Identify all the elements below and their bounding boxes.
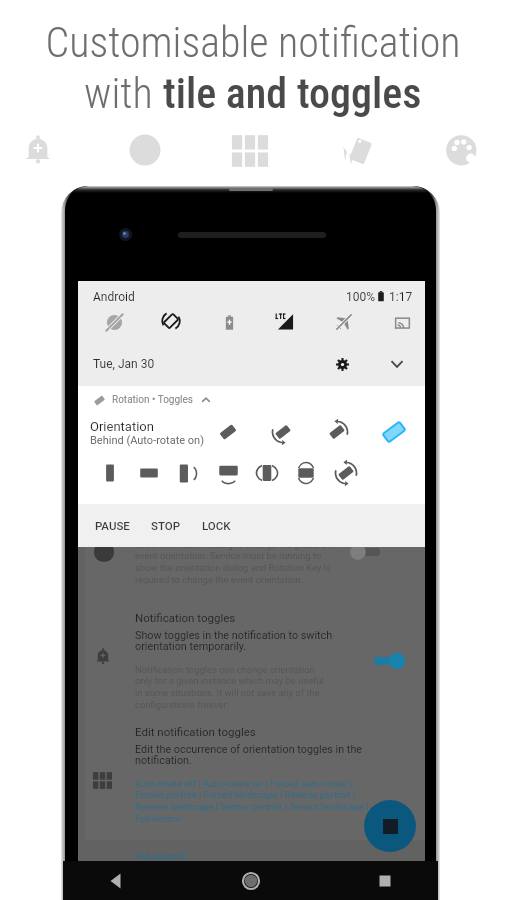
button[interactable]: Advanced (135, 849, 186, 862)
button[interactable]: Theme (444, 133, 480, 169)
staticText: 1:17 (389, 290, 413, 304)
staticText: PAUSE (95, 519, 130, 532)
staticText: Android (93, 290, 135, 304)
staticText: Rotation • Toggles (112, 394, 193, 406)
staticText: Edit notification toggles (135, 725, 256, 738)
button[interactable]: Recents (372, 868, 398, 894)
button[interactable]: Auto-rotate off (212, 416, 244, 448)
staticText: Tue, Jan 30 (93, 357, 155, 371)
button[interactable]: Mobile data (271, 307, 299, 335)
button[interactable]: Battery saver (215, 308, 243, 336)
button[interactable]: STOP (143, 510, 189, 541)
button[interactable]: Notification toggles switch (372, 651, 406, 671)
button[interactable]: Home (238, 868, 264, 894)
staticText: Auto-rotate off | Auto-rotate on | Force… (135, 778, 369, 825)
button[interactable]: Expand (387, 354, 407, 374)
staticText: Notification toggles (135, 611, 236, 624)
staticText: tile and toggles (163, 69, 422, 118)
button[interactable]: Settings (332, 354, 352, 374)
staticText: STOP (151, 519, 181, 532)
button[interactable]: LOCK (194, 510, 239, 541)
button[interactable]: Forced landscape (133, 457, 165, 489)
staticText: with (84, 69, 163, 118)
staticText: 100% (346, 290, 376, 304)
button[interactable]: Grid (232, 133, 268, 169)
button[interactable]: Sensor landscape (290, 457, 322, 489)
button[interactable]: Auto-rotate on (267, 416, 299, 448)
button[interactable]: Full sensor (330, 457, 362, 489)
button[interactable]: Cast (388, 309, 416, 337)
button[interactable]: PAUSE (87, 510, 138, 541)
staticText: LOCK (202, 519, 231, 532)
staticText: show orientation dialog to change the gl… (135, 539, 331, 586)
button[interactable]: Sensor portrait (251, 457, 283, 489)
button[interactable]: Reverse portrait (170, 457, 202, 489)
button[interactable]: Forced portrait (94, 457, 126, 489)
staticText: Orientation (90, 419, 154, 434)
staticText: Show toggles in the notification to swit… (135, 629, 333, 653)
button[interactable]: Add notification (20, 133, 56, 169)
button[interactable]: Reverse landscape (212, 457, 244, 489)
staticText: Customisable notification (45, 18, 461, 67)
button[interactable]: Auto rotate (157, 307, 185, 335)
staticText: Behind (Auto-rotate on) (90, 434, 204, 447)
staticText: Edit the occurrence of orientation toggl… (135, 743, 363, 767)
button[interactable]: Forced auto-rotate (321, 416, 353, 448)
button[interactable]: Appearance (127, 133, 163, 169)
staticText: Notification toggles can change orientat… (135, 664, 324, 711)
button[interactable]: Rotate (339, 133, 375, 169)
button[interactable]: Back (103, 868, 129, 894)
button[interactable]: Airplane mode (330, 308, 358, 336)
button[interactable]: Stop (364, 800, 416, 852)
button[interactable]: Do not disturb (100, 308, 128, 336)
staticText: Advanced (135, 849, 186, 862)
button[interactable]: Selected orientation (378, 416, 410, 448)
